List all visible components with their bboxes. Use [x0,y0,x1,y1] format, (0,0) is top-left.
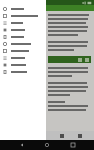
button[interactable] [0,68,46,75]
button[interactable]: Action [76,132,84,140]
button[interactable] [0,47,46,54]
button[interactable] [0,26,46,33]
button[interactable] [0,54,46,61]
button[interactable]: Recent apps [69,141,77,149]
button[interactable] [0,19,46,26]
button[interactable] [0,12,46,19]
button[interactable]: Action [58,132,66,140]
button[interactable] [0,33,46,40]
button[interactable] [0,61,46,68]
button[interactable] [0,40,46,47]
button[interactable] [0,5,46,12]
button[interactable]: Home [43,141,51,149]
button[interactable]: Back [18,141,26,149]
